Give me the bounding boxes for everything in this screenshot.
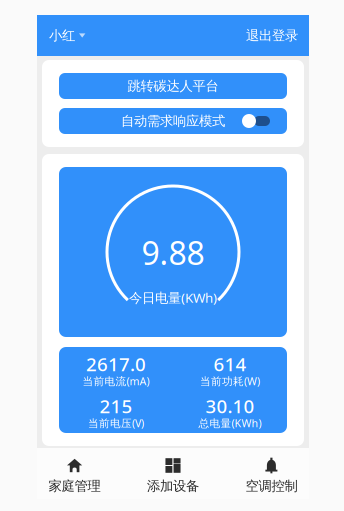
staticText: 当前电流(mA) [82, 374, 149, 388]
staticText: 今日电量(KWh) [129, 289, 217, 306]
staticText: 当前电压(V) [88, 416, 144, 430]
staticText: 30.10 [205, 394, 254, 418]
button[interactable]: 退出登录 [246, 14, 309, 57]
button[interactable]: 跳转碳达人平台 [59, 73, 287, 99]
staticText: 退出登录 [246, 27, 298, 44]
button[interactable]: 空调控制 [222, 448, 321, 499]
staticText: 614 [213, 352, 246, 376]
staticText: 当前功耗(W) [200, 374, 260, 388]
staticText: 小红 [49, 27, 75, 44]
button[interactable]: 家庭管理 [25, 448, 124, 499]
staticText: 自动需求响应模式 [121, 113, 225, 129]
staticText: 2617.0 [86, 352, 146, 376]
button[interactable]: 自动需求响应模式 [59, 108, 287, 134]
button[interactable]: 添加设备 [124, 448, 222, 499]
staticText: 家庭管理 [49, 478, 101, 494]
staticText: 9.88 [141, 231, 204, 274]
staticText: 跳转碳达人平台 [127, 78, 218, 94]
staticText: 总电量(KWh) [198, 416, 261, 430]
staticText: 空调控制 [245, 478, 297, 494]
staticText: 添加设备 [147, 478, 199, 494]
button[interactable]: 小红 [37, 14, 85, 57]
staticText: 215 [99, 394, 132, 418]
